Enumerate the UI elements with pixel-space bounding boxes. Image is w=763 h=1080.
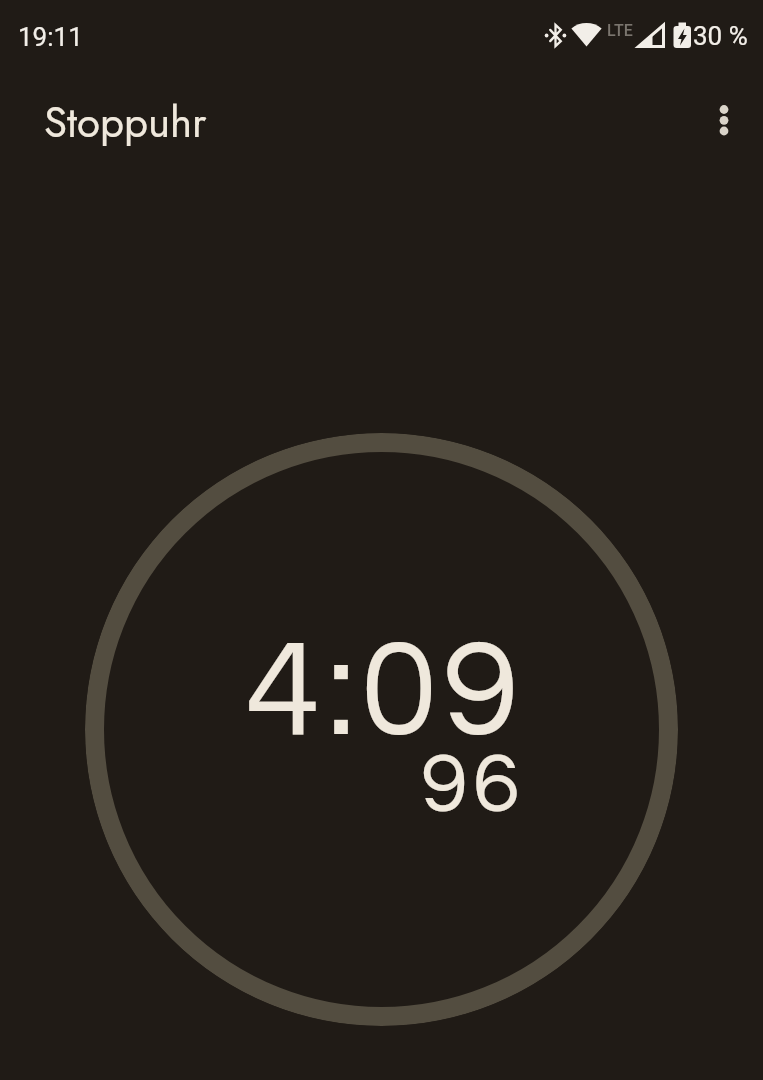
staticText: LTE <box>607 21 633 40</box>
button[interactable] <box>85 433 678 1026</box>
staticText: 19:11 <box>18 22 83 52</box>
staticText: 4:09 <box>245 621 525 763</box>
button[interactable] <box>700 96 748 144</box>
staticText: Stoppuhr <box>44 92 207 153</box>
staticText: 96 <box>421 741 525 829</box>
staticText: 30 % <box>693 21 748 51</box>
